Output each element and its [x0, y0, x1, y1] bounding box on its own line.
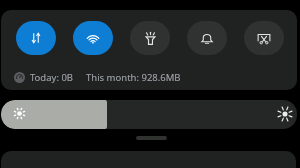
button[interactable]: Do not disturb: [187, 21, 227, 55]
button[interactable]: Mobile data: [16, 21, 56, 55]
staticText: This month: 928.6MB: [86, 71, 181, 84]
button[interactable]: Flashlight: [130, 21, 170, 55]
button[interactable]: [1, 100, 297, 129]
staticText: Today: 0B: [30, 71, 74, 84]
button[interactable]: Screenshot: [244, 21, 284, 55]
button[interactable]: Wi-Fi: [73, 21, 113, 55]
